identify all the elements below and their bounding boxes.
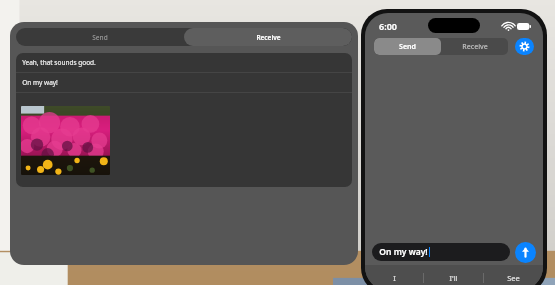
- staticText: Send: [399, 42, 416, 52]
- button[interactable]: Send: [16, 28, 184, 46]
- button[interactable]: [16, 93, 352, 187]
- staticText: I: [393, 273, 396, 283]
- button[interactable]: I: [365, 265, 423, 285]
- staticText: Receive: [256, 33, 281, 42]
- staticText: I'll: [449, 273, 458, 283]
- staticText: On my way!: [22, 78, 58, 87]
- button[interactable]: Yeah, that sounds good.: [16, 53, 352, 72]
- staticText: 6:00: [379, 20, 397, 32]
- button[interactable]: Receive: [184, 28, 352, 46]
- staticText: Yeah, that sounds good.: [22, 58, 96, 67]
- staticText: Send: [92, 33, 108, 42]
- button[interactable]: On my way!: [372, 243, 510, 261]
- staticText: On my way!: [379, 246, 428, 258]
- staticText: Receive: [462, 42, 488, 52]
- button[interactable]: Send: [374, 38, 441, 55]
- button[interactable]: Settings: [515, 38, 534, 55]
- button[interactable]: Receive: [441, 38, 508, 55]
- button[interactable]: Send: [515, 242, 536, 263]
- button[interactable]: On my way!: [16, 73, 352, 92]
- button[interactable]: I'll: [424, 265, 483, 285]
- button[interactable]: See: [484, 265, 543, 285]
- staticText: See: [507, 273, 520, 283]
